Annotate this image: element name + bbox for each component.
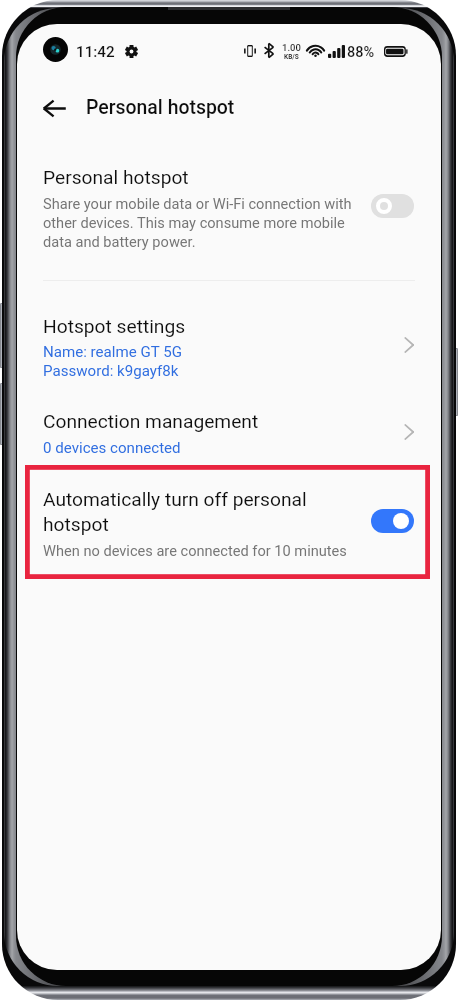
staticText: 11:42 (76, 43, 115, 61)
button[interactable] (17, 465, 441, 579)
button[interactable]: Back (34, 88, 74, 128)
staticText: Share your mobile data or Wi-Fi connecti… (43, 195, 363, 251)
staticText: 1.00 (282, 42, 301, 53)
staticText: Name: realme GT 5G (43, 343, 182, 361)
staticText: KB/S (284, 53, 299, 61)
staticText: 88% (347, 44, 375, 61)
staticText: Hotspot settings (43, 315, 186, 338)
staticText: When no devices are connected for 10 min… (43, 542, 347, 559)
button[interactable] (17, 306, 441, 382)
staticText: Personal hotspot (86, 96, 235, 119)
staticText: Connection management (43, 410, 259, 433)
staticText: Password: k9gayf8k (43, 362, 179, 380)
button[interactable] (17, 156, 441, 276)
button[interactable]: Switch off (371, 194, 414, 218)
staticText: 0 devices connected (43, 439, 181, 457)
staticText: Personal hotspot (43, 166, 189, 189)
button[interactable]: Switch on (371, 509, 414, 533)
button[interactable] (17, 402, 441, 460)
staticText: Automatically turn off personal hotspot (43, 488, 343, 535)
